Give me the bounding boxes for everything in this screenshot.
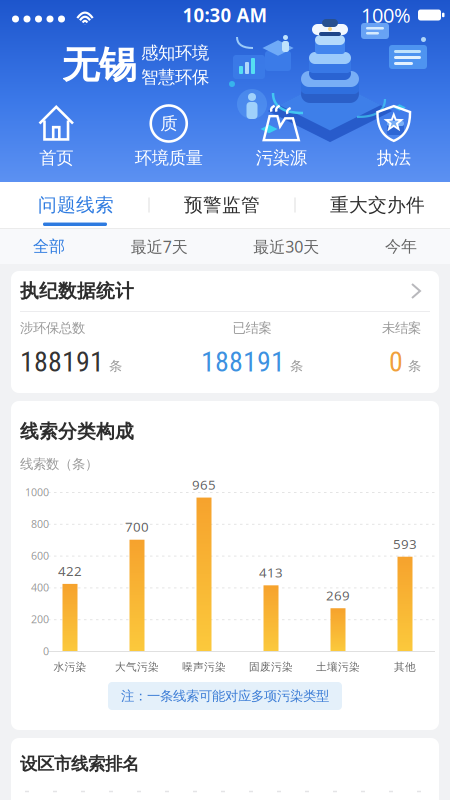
button[interactable]: 最近7天 [131,236,188,257]
staticText: 800 [31,517,49,531]
staticText: 400 [31,580,49,594]
staticText: 200 [31,612,49,626]
staticText: 未结案 [382,320,421,336]
staticText: 条 [408,358,421,374]
staticText: 条 [109,358,122,374]
staticText: 问题线索 [38,193,114,216]
staticText: 噪声污染 [182,660,226,673]
staticText: 最近7天 [131,236,188,257]
button[interactable]: 最近30天 [253,236,319,257]
staticText: 重大交办件 [330,193,425,216]
staticText: 10:30 AM [182,3,267,27]
button[interactable]: 重大交办件 [330,193,425,216]
button[interactable]: 预警监管 [184,193,260,216]
staticText: 965 [192,476,216,493]
staticText: 注：一条线索可能对应多项污染类型 [121,688,329,704]
button[interactable]: 执纪数据统计 [11,271,439,393]
staticText: 条 [290,358,303,374]
staticText: 大气污染 [115,660,159,673]
staticText: 593 [393,535,417,553]
staticText: 水污染 [53,660,86,673]
staticText: 污染源 [256,147,307,169]
button[interactable]: 问题线索 [38,193,114,216]
staticText: 最近30天 [253,236,319,257]
button[interactable]: 污染源 [225,105,337,169]
staticText: 422 [58,562,82,580]
staticText: 1000 [25,485,49,499]
staticText: 执纪数据统计 [20,279,134,302]
staticText: 感知环境 [141,42,209,63]
staticText: 600 [31,548,49,563]
staticText: 固废污染 [249,660,293,673]
staticText: 预警监管 [184,193,260,216]
staticText: 无锡 [62,42,136,88]
button[interactable]: 质 [112,105,225,169]
staticText: 188191 [201,346,285,378]
staticText: 已结案 [232,320,271,336]
staticText: 700 [125,518,149,535]
staticText: 269 [326,586,350,604]
staticText: 执法 [377,147,411,169]
staticText: 智慧环保 [141,66,209,88]
staticText: 首页 [39,147,73,169]
staticText: 全部 [33,237,65,256]
staticText: 线索分类构成 [20,420,134,443]
staticText: 今年 [385,237,417,256]
button[interactable]: 首页 [0,105,112,169]
staticText: 土壤污染 [316,660,360,673]
staticText: 188191 [20,346,104,378]
staticText: 其他 [394,660,416,673]
staticText: 413 [259,563,283,581]
staticText: 质 [160,113,177,134]
staticText: 0 [43,644,49,658]
staticText: 100% [361,2,411,28]
button[interactable]: 今年 [385,237,417,256]
staticText: 环境质量 [135,147,203,169]
staticText: 0 [389,346,403,378]
button[interactable]: 全部 [33,237,65,256]
staticText: 涉环保总数 [20,320,85,336]
staticText: 设区市线索排名 [20,753,139,775]
staticText: 线索数（条） [20,456,98,472]
button[interactable]: 执法 [337,105,450,169]
